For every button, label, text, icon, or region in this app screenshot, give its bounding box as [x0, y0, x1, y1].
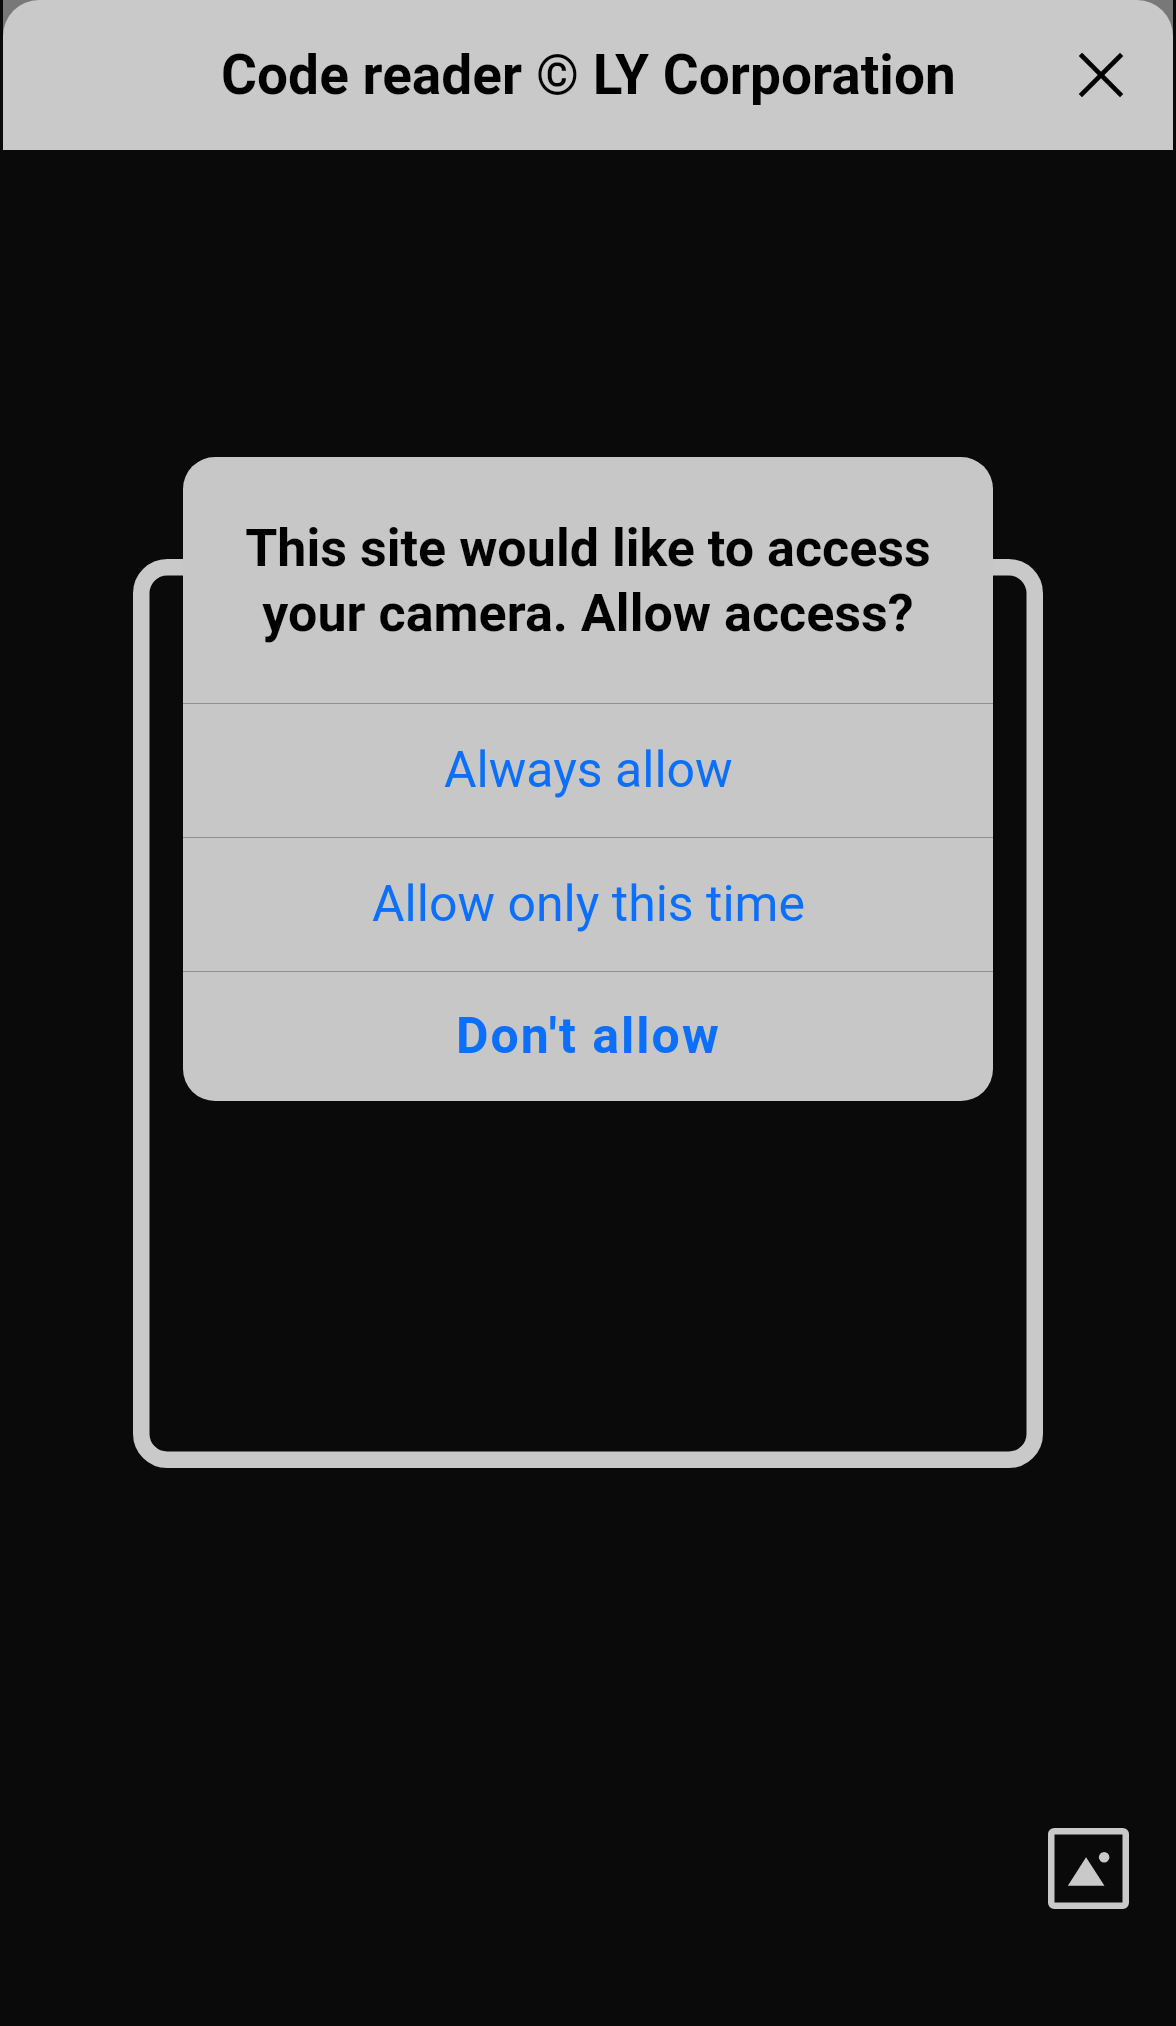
staticText: Don't allow [456, 1007, 721, 1066]
button[interactable]: Always allow [183, 704, 993, 837]
staticText: This site would like to access your came… [245, 518, 931, 643]
button[interactable]: Open gallery [1048, 1828, 1129, 1909]
staticText: Allow only this time [372, 875, 805, 934]
button[interactable]: Close [1058, 32, 1144, 118]
button[interactable]: Don't allow [183, 972, 993, 1101]
staticText: Always allow [444, 741, 733, 800]
staticText: Code reader © LY Corporation [221, 43, 956, 107]
button[interactable]: Allow only this time [183, 838, 993, 971]
